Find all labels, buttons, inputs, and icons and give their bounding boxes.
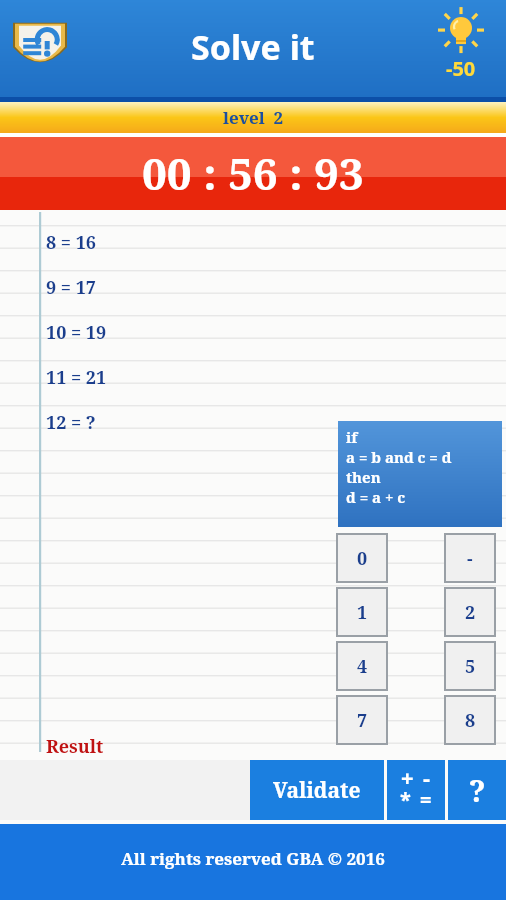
staticText: if [346, 427, 358, 447]
staticText: level 2 [223, 106, 284, 129]
button[interactable]: 1 [336, 587, 388, 637]
button[interactable]: if [338, 421, 502, 527]
button[interactable]: 2 [444, 587, 496, 637]
staticText: 2 [465, 600, 476, 625]
button[interactable]: Hint [432, 8, 490, 88]
staticText: 8 [465, 708, 476, 733]
staticText: a = b and c = d [346, 447, 452, 467]
button[interactable]: Operators [387, 760, 445, 820]
staticText: -50 [446, 55, 476, 82]
button[interactable]: 5 [444, 641, 496, 691]
staticText: Validate [273, 776, 361, 805]
staticText: then [346, 467, 381, 487]
staticText: All rights reserved GBA © 2016 [121, 847, 385, 870]
staticText: 11 = 21 [46, 365, 107, 390]
staticText: 1 [357, 600, 368, 625]
button[interactable]: 8 [444, 695, 496, 745]
staticText: 0 [357, 546, 368, 571]
staticText: 8 = 16 [46, 230, 97, 255]
staticText: d = a + c [346, 487, 406, 507]
button[interactable]: Validate [250, 760, 384, 820]
staticText: 7 [357, 708, 368, 733]
button[interactable]: 0 [336, 533, 388, 583]
staticText: Solve it [191, 24, 315, 70]
staticText: ? [469, 770, 486, 811]
button[interactable]: 4 [336, 641, 388, 691]
button[interactable]: - [444, 533, 496, 583]
staticText: 5 [465, 654, 476, 679]
staticText: - [467, 546, 473, 571]
staticText: 9 = 17 [46, 275, 97, 300]
staticText: 00 : 56 : 93 [142, 143, 364, 203]
button[interactable]: 7 [336, 695, 388, 745]
staticText: + [401, 762, 414, 792]
button[interactable]: Help [10, 14, 70, 74]
staticText: Result [46, 734, 104, 759]
staticText: - [423, 762, 431, 792]
staticText: 4 [357, 654, 368, 679]
staticText: * [400, 786, 411, 813]
staticText: 10 = 19 [46, 320, 107, 345]
button[interactable]: Help [448, 760, 506, 820]
staticText: 12 = ? [46, 410, 96, 435]
staticText: = [420, 786, 432, 813]
